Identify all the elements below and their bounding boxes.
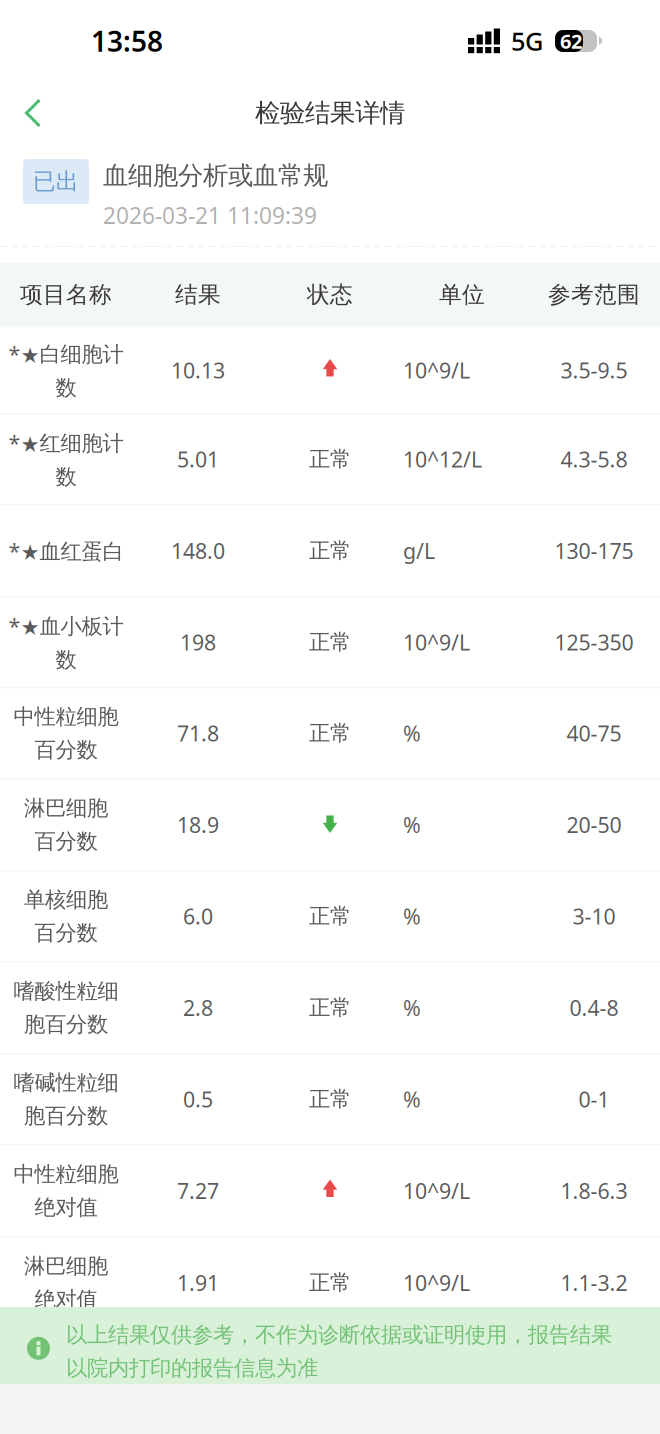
staticText: 1.1-3.2 (560, 1269, 627, 1297)
staticText: 胞百分数 (24, 1011, 108, 1037)
staticText: 148.0 (171, 537, 225, 565)
staticText: 百分数 (34, 920, 97, 946)
staticText: 正常 (309, 629, 351, 655)
staticText: 71.8 (177, 719, 219, 747)
button[interactable]: *★血小板计 (0, 597, 660, 688)
staticText: *★红细胞计 (8, 428, 123, 457)
staticText: 绝对值 (34, 1194, 97, 1220)
staticText: 数 (55, 647, 76, 673)
staticText: 正常 (309, 446, 351, 472)
staticText: 10^9/L (403, 1177, 470, 1205)
staticText: 2026-03-21 11:09:39 (103, 200, 317, 230)
button[interactable]: 淋巴细胞 (0, 779, 660, 871)
button[interactable]: 返回 (0, 82, 67, 143)
staticText: 数 (55, 464, 76, 490)
staticText: 嗜酸性粒细 (13, 978, 118, 1004)
staticText: 3.5-9.5 (560, 356, 627, 384)
staticText: 正常 (309, 995, 351, 1021)
staticText: 结果 (175, 281, 221, 309)
staticText: 血细胞分析或血常规 (103, 160, 328, 191)
staticText: 10^12/L (403, 445, 482, 473)
button[interactable]: 嗜碱性粒细 (0, 1054, 660, 1145)
staticText: 数 (55, 375, 76, 401)
staticText: 7.27 (177, 1177, 219, 1205)
staticText: *★血小板计 (8, 611, 123, 640)
button[interactable]: *★白细胞计 (0, 327, 660, 414)
staticText: 正常 (309, 1270, 351, 1296)
staticText: 已出 (33, 168, 79, 195)
staticText: % (403, 1085, 421, 1113)
staticText: % (403, 902, 421, 930)
button[interactable]: 单核细胞 (0, 871, 660, 962)
staticText: 以院内打印的报告信息为准 (66, 1355, 318, 1381)
staticText: % (403, 719, 421, 747)
staticText: 以上结果仅供参考，不作为诊断依据或证明使用，报告结果 (66, 1322, 612, 1348)
staticText: 0.4-8 (569, 994, 618, 1022)
button[interactable]: 中性粒细胞 (0, 1145, 660, 1237)
staticText: 198 (180, 628, 216, 656)
staticText: 正常 (309, 903, 351, 929)
staticText: % (403, 811, 421, 839)
staticText: g/L (403, 537, 435, 565)
staticText: 1.91 (177, 1269, 219, 1297)
staticText: 中性粒细胞 (13, 703, 118, 730)
staticText: 0.5 (183, 1085, 213, 1113)
staticText: 百分数 (34, 737, 97, 763)
staticText: 10.13 (171, 356, 225, 384)
staticText: 正常 (309, 1086, 351, 1112)
staticText: 状态 (307, 281, 353, 309)
staticText: 130-175 (554, 537, 633, 565)
staticText: 5.01 (177, 445, 219, 473)
staticText: 20-50 (566, 811, 621, 839)
staticText: 6.0 (183, 902, 213, 930)
staticText: 项目名称 (20, 281, 112, 309)
staticText: 62 (560, 28, 582, 54)
staticText: % (403, 994, 421, 1022)
button[interactable]: *★血红蛋白 (0, 505, 660, 597)
staticText: 10^9/L (403, 356, 470, 384)
staticText: 5G (511, 24, 543, 58)
staticText: 检验结果详情 (255, 97, 405, 128)
staticText: 绝对值 (34, 1286, 97, 1312)
staticText: *★血红蛋白 (8, 537, 123, 565)
staticText: 13:58 (91, 22, 163, 60)
button[interactable]: 嗜酸性粒细 (0, 962, 660, 1054)
staticText: 10^9/L (403, 1269, 470, 1297)
staticText: 中性粒细胞 (13, 1161, 118, 1187)
staticText: 0-1 (578, 1085, 609, 1113)
button[interactable]: *★红细胞计 (0, 414, 660, 505)
staticText: 淋巴细胞 (24, 1253, 108, 1279)
staticText: 40-75 (566, 719, 621, 747)
staticText: *★白细胞计 (8, 339, 123, 368)
staticText: 百分数 (34, 828, 97, 854)
button[interactable]: 中性粒细胞 (0, 688, 660, 779)
staticText: 正常 (309, 538, 351, 564)
staticText: 嗜碱性粒细 (13, 1069, 118, 1096)
staticText: 10^9/L (403, 628, 470, 656)
staticText: 125-350 (554, 628, 633, 656)
staticText: 1.8-6.3 (560, 1177, 627, 1205)
staticText: 单位 (439, 281, 485, 309)
button[interactable]: 淋巴细胞 (0, 1237, 660, 1329)
staticText: 正常 (309, 720, 351, 746)
staticText: 2.8 (183, 994, 213, 1022)
staticText: 淋巴细胞 (24, 795, 108, 821)
staticText: 4.3-5.8 (560, 445, 627, 473)
staticText: 3-10 (572, 902, 615, 930)
staticText: 单核细胞 (24, 886, 108, 913)
staticText: 参考范围 (548, 281, 640, 309)
staticText: 18.9 (177, 811, 219, 839)
staticText: 胞百分数 (24, 1103, 108, 1129)
